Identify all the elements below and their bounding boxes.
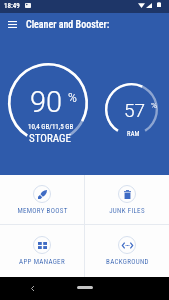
staticText: % xyxy=(68,91,77,105)
button[interactable]: JUNK FILES xyxy=(85,175,169,224)
button[interactable]: APP MANAGER xyxy=(0,225,84,277)
staticText: JUNK FILES xyxy=(109,207,145,215)
staticText: 57 xyxy=(124,99,146,121)
button[interactable]: Back xyxy=(25,277,40,300)
staticText: 10,4 GB/11,5 GB xyxy=(28,123,74,131)
button[interactable]: BACKGROUND xyxy=(85,225,169,277)
staticText: STORAGE xyxy=(29,132,71,145)
button[interactable]: Home xyxy=(77,286,93,289)
staticText: 18:49 xyxy=(4,2,20,10)
staticText: Cleaner and Booster: xyxy=(26,19,110,31)
staticText: RAM xyxy=(127,130,140,138)
staticText: MEMORY BOOST xyxy=(17,207,68,215)
staticText: APP MANAGER xyxy=(19,258,65,266)
button[interactable]: Open navigation menu xyxy=(4,13,21,35)
staticText: 90 xyxy=(30,85,63,119)
staticText: BACKGROUND xyxy=(106,258,149,266)
staticText: % xyxy=(151,101,157,110)
button[interactable]: MEMORY BOOST xyxy=(0,175,84,224)
